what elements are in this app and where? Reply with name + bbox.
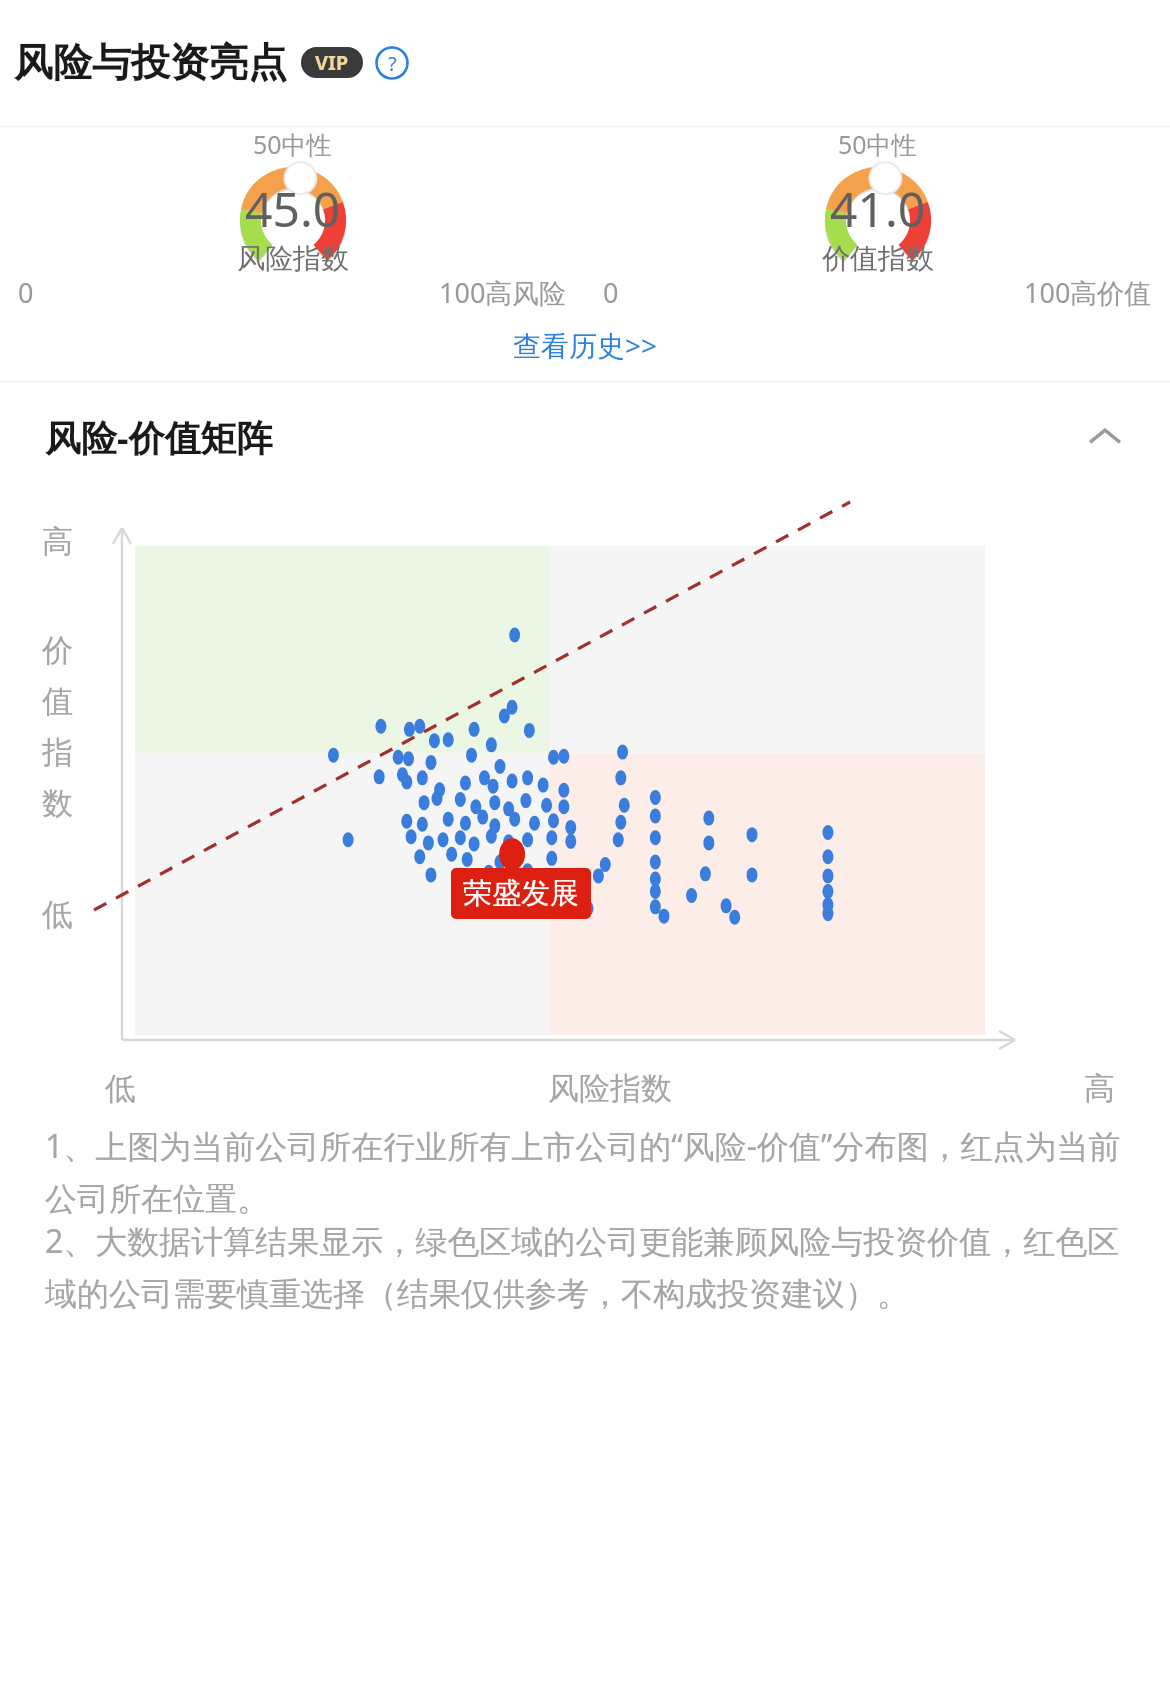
staticText: 风险-价值矩阵 xyxy=(45,413,273,462)
staticText: 100高价值 xyxy=(1024,274,1152,309)
staticText: 风险指数 xyxy=(237,241,349,276)
staticText: 价 xyxy=(42,631,73,670)
staticText: 低 xyxy=(42,895,73,934)
staticText: 值 xyxy=(42,682,73,721)
staticText: 查看历史>> xyxy=(513,326,658,364)
staticText: ? xyxy=(388,50,397,77)
staticText: 2、大数据计算结果显示，绿色区域的公司更能兼顾风险与投资价值，红色区域的公司需要… xyxy=(45,1219,1125,1314)
button[interactable]: VIP xyxy=(301,47,363,78)
staticText: 价值指数 xyxy=(822,241,934,276)
staticText: 0 xyxy=(603,274,619,309)
staticText: 100高风险 xyxy=(439,274,567,309)
staticText: 1、上图为当前公司所在行业所有上市公司的“风险-价值”分布图，红点为当前公司所在… xyxy=(45,1124,1125,1219)
staticText: 41.0 xyxy=(830,176,926,241)
staticText: 高 xyxy=(42,522,73,561)
staticText: 50中性 xyxy=(838,127,917,161)
button[interactable]: 查看历史>> xyxy=(493,318,678,372)
staticText: 低 xyxy=(105,1069,136,1108)
staticText: 风险指数 xyxy=(548,1069,672,1108)
staticText: 45.0 xyxy=(245,176,341,241)
staticText: 风险与投资亮点 xyxy=(14,38,287,87)
other: 收起 xyxy=(1085,417,1125,457)
staticText: 50中性 xyxy=(253,127,332,161)
staticText: 指 xyxy=(42,733,73,772)
staticText: 高 xyxy=(1084,1069,1115,1108)
staticText: 荣盛发展 xyxy=(463,875,579,912)
button[interactable]: 帮助说明 xyxy=(375,46,409,80)
button[interactable]: 风险-价值矩阵 xyxy=(0,382,1170,492)
staticText: 数 xyxy=(42,784,73,823)
staticText: 0 xyxy=(18,274,34,309)
staticText: VIP xyxy=(315,49,349,76)
